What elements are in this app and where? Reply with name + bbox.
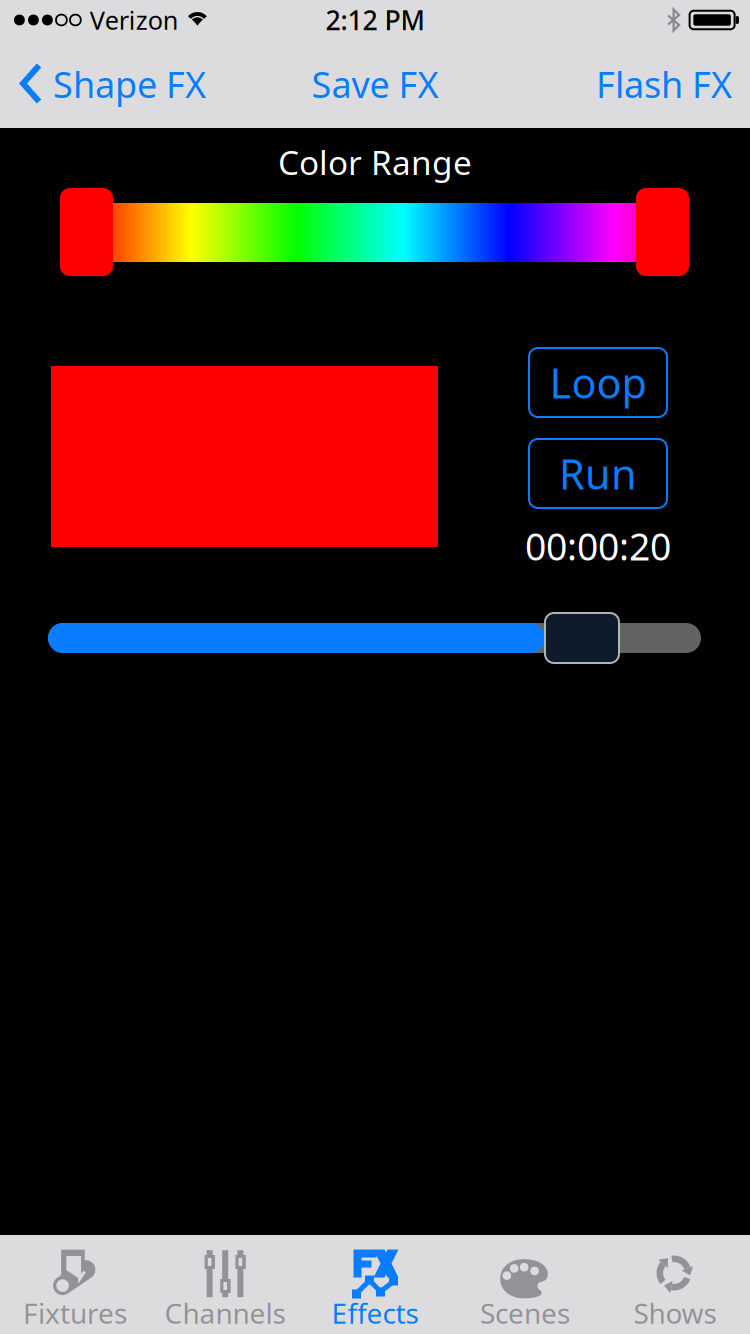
- button[interactable]: Channels: [150, 1235, 300, 1334]
- staticText: Save FX: [311, 60, 438, 108]
- staticText: 2:12 PM: [325, 2, 424, 38]
- staticText: Verizon: [90, 3, 179, 37]
- button[interactable]: Shows: [600, 1235, 750, 1334]
- button[interactable]: Flash FX: [582, 40, 750, 128]
- button[interactable]: Effects: [300, 1235, 450, 1334]
- staticText: Color Range: [278, 140, 472, 184]
- staticText: Fixtures: [23, 1294, 127, 1332]
- staticText: Channels: [164, 1294, 285, 1332]
- button[interactable]: Loop: [529, 348, 667, 417]
- staticText: Scenes: [480, 1294, 570, 1332]
- staticText: 00:00:20: [525, 521, 671, 571]
- button[interactable]: Fixtures: [0, 1235, 150, 1334]
- staticText: Flash FX: [596, 60, 732, 108]
- button[interactable]: Save FX: [295, 40, 454, 128]
- staticText: Shape FX: [53, 60, 206, 108]
- staticText: Shows: [633, 1294, 716, 1332]
- staticText: Run: [559, 446, 637, 501]
- button[interactable]: Shape FX: [0, 40, 218, 128]
- staticText: Loop: [549, 355, 646, 410]
- button[interactable]: Run: [529, 439, 667, 508]
- button[interactable]: Scenes: [450, 1235, 600, 1334]
- staticText: Effects: [331, 1294, 418, 1332]
